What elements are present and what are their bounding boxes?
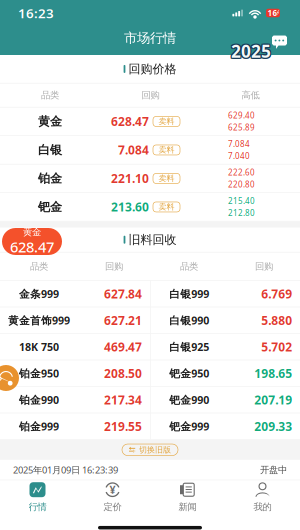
staticText: 7.084 xyxy=(228,139,250,149)
staticText: 品类 xyxy=(180,261,198,272)
staticText: 白银999 xyxy=(169,287,209,301)
staticText: 2025 xyxy=(230,39,270,62)
staticText: 209.33 xyxy=(254,418,292,434)
button[interactable]: 钯金950 xyxy=(150,360,300,387)
staticText: 5.880 xyxy=(261,312,292,328)
staticText: 高低 xyxy=(241,89,259,101)
staticText: 6.769 xyxy=(261,286,292,302)
button[interactable]: ¥ xyxy=(75,476,150,518)
staticText: 215.40 xyxy=(228,196,255,206)
staticText: 铂金990 xyxy=(19,393,59,407)
staticText: 208.50 xyxy=(104,365,142,381)
staticText: 市场行情 xyxy=(124,30,176,46)
button[interactable]: 18K 750 xyxy=(0,334,150,360)
button[interactable]: 新闻 xyxy=(150,476,225,518)
staticText: 卖料 xyxy=(158,116,174,126)
staticText: 2025 xyxy=(232,39,272,62)
button[interactable]: 铂金 xyxy=(0,164,300,193)
staticText: 2025 xyxy=(232,40,272,63)
button[interactable]: 黄金 xyxy=(2,228,62,255)
staticText: 2025 xyxy=(230,39,270,62)
button[interactable]: 白银 xyxy=(0,136,300,164)
staticText: 16 xyxy=(267,7,277,18)
button[interactable]: 铂金999 xyxy=(0,413,150,440)
button[interactable]: 钯金 xyxy=(0,193,300,221)
button[interactable]: 白银990 xyxy=(150,307,300,334)
staticText: 旧料回收 xyxy=(128,232,176,247)
staticText: 5.702 xyxy=(261,339,292,355)
staticText: 2025 xyxy=(231,40,271,63)
staticText: 2025年01月09日 16:23:39 xyxy=(13,464,118,476)
staticText: 627.84 xyxy=(104,286,142,302)
staticText: 219.55 xyxy=(104,418,142,434)
staticText: 卖料 xyxy=(158,145,174,155)
button[interactable]: 切换旧版 xyxy=(122,444,178,456)
staticText: 黄金首饰999 xyxy=(8,313,70,327)
staticText: 卖料 xyxy=(158,202,174,212)
staticText: 铂金999 xyxy=(19,419,59,433)
staticText: 回购 xyxy=(255,261,273,272)
staticText: 221.10 xyxy=(111,170,149,186)
staticText: 开盘中 xyxy=(260,464,287,476)
staticText: ¥ xyxy=(109,483,115,497)
button[interactable]: 钯金990 xyxy=(150,387,300,413)
staticText: 铂金950 xyxy=(19,366,59,380)
staticText: 627.21 xyxy=(104,312,142,328)
staticText: 白银925 xyxy=(169,340,209,354)
staticText: 2025 xyxy=(230,40,270,63)
button[interactable]: 行情 xyxy=(0,476,75,518)
staticText: 回购 xyxy=(105,261,123,272)
staticText: 切换旧版 xyxy=(139,445,171,455)
staticText: 钯金 xyxy=(38,200,62,214)
staticText: 我的 xyxy=(253,501,271,513)
staticText: 钯金999 xyxy=(169,419,209,433)
staticText: 回购价格 xyxy=(128,62,176,76)
staticText: 18K 750 xyxy=(19,340,59,354)
staticText: 新闻 xyxy=(178,501,196,513)
button[interactable]: 金条999 xyxy=(0,281,150,307)
staticText: 白银 xyxy=(38,143,62,157)
staticText: 金条999 xyxy=(19,287,59,301)
button[interactable]: 白银925 xyxy=(150,334,300,360)
button[interactable]: 黄金 xyxy=(0,107,300,136)
staticText: 钯金950 xyxy=(169,366,209,380)
staticText: 212.80 xyxy=(228,208,255,218)
staticText: 7.040 xyxy=(228,151,250,161)
staticText: 213.60 xyxy=(111,199,149,215)
staticText: 品类 xyxy=(30,261,48,272)
staticText: 钯金990 xyxy=(169,393,209,407)
staticText: 222.60 xyxy=(228,167,255,178)
staticText: 黄金 xyxy=(38,114,62,129)
staticText: 217.34 xyxy=(104,392,142,408)
staticText: 220.80 xyxy=(228,179,255,190)
staticText: 回购 xyxy=(141,89,159,101)
staticText: 2025 xyxy=(232,39,272,62)
staticText: 2025 xyxy=(231,39,271,62)
button[interactable]: 钯金999 xyxy=(150,413,300,440)
staticText: 黄金 xyxy=(23,226,41,238)
button[interactable]: 铂金950 xyxy=(0,360,150,387)
staticText: 625.89 xyxy=(228,122,255,133)
staticText: 定价 xyxy=(103,501,121,513)
button[interactable]: 白银999 xyxy=(150,281,300,307)
button[interactable]: 铂金990 xyxy=(0,387,150,413)
staticText: 198.65 xyxy=(254,365,292,381)
staticText: 品类 xyxy=(41,89,59,101)
staticText: 469.47 xyxy=(104,339,142,355)
staticText: 行情 xyxy=(28,501,46,513)
staticText: 207.19 xyxy=(254,392,292,408)
button[interactable]: 我的 xyxy=(225,476,300,518)
staticText: 628.47 xyxy=(111,113,149,129)
staticText: 16:23 xyxy=(18,4,54,22)
staticText: 白银990 xyxy=(169,313,209,327)
staticText: 铂金 xyxy=(38,171,62,186)
staticText: 卖料 xyxy=(158,173,174,183)
staticText: 628.47 xyxy=(10,237,54,256)
button[interactable]: 客服 xyxy=(0,365,19,391)
staticText: 2025 xyxy=(231,38,271,61)
staticText: 629.40 xyxy=(228,110,255,121)
button[interactable]: 黄金首饰999 xyxy=(0,307,150,334)
staticText: 7.084 xyxy=(118,142,149,158)
